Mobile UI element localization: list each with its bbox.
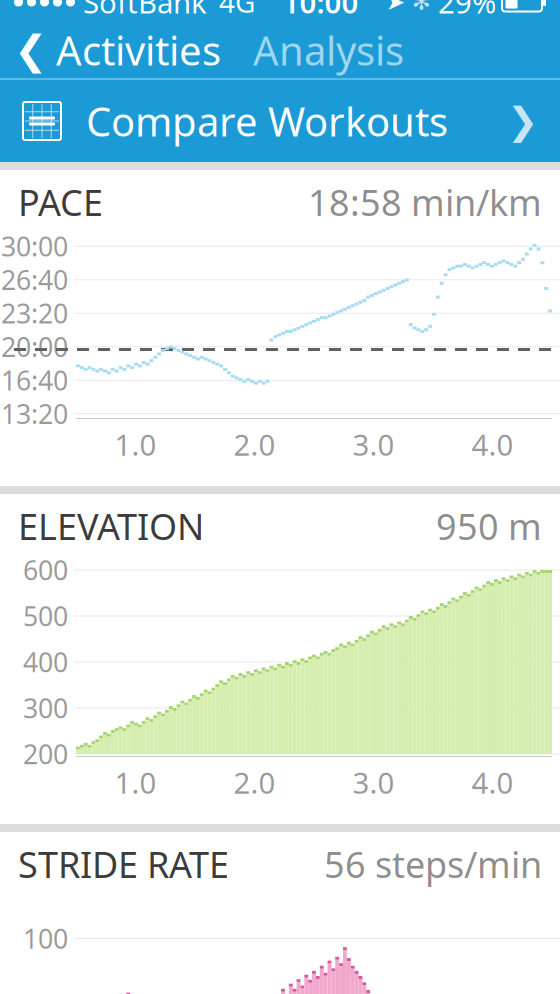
staticText: Activities [56, 23, 221, 76]
staticText: 300 [23, 690, 68, 726]
staticText: 200 [23, 736, 68, 772]
staticText: 56 steps/min [324, 840, 542, 888]
staticText: STRIDE RATE [18, 840, 229, 888]
staticText: 30:00 [1, 228, 68, 264]
button[interactable]: ❮ [0, 22, 231, 78]
staticText: 16:40 [1, 362, 68, 398]
staticText: 1.0 [114, 763, 156, 802]
staticText: PACE [18, 178, 103, 226]
staticText: Analysis [253, 23, 404, 76]
staticText: ✻ [412, 0, 431, 15]
staticText: 23:20 [1, 295, 68, 331]
staticText: Compare Workouts [86, 94, 448, 147]
staticText: 26:40 [1, 262, 68, 297]
staticText: 3.0 [352, 763, 394, 802]
staticText: 18:58 min/km [308, 178, 542, 226]
staticText: 950 m [436, 502, 542, 550]
staticText: 4.0 [471, 763, 513, 802]
staticText: 100 [23, 921, 68, 956]
staticText: 1.0 [114, 425, 156, 464]
staticText: 600 [23, 552, 68, 588]
staticText: 20:00 [1, 329, 68, 364]
staticText: 4.0 [471, 425, 513, 464]
staticText: ELEVATION [18, 502, 204, 550]
staticText: ➤ [386, 0, 405, 15]
staticText: 29% [438, 0, 496, 21]
staticText: 400 [23, 644, 68, 680]
staticText: 10:00 [282, 0, 358, 21]
staticText: 13:20 [1, 396, 68, 431]
button[interactable]: Compare Workouts [0, 80, 560, 162]
staticText: 4G [219, 0, 255, 21]
staticText: ❮ [14, 27, 48, 73]
staticText: 500 [23, 598, 68, 634]
staticText: 3.0 [352, 425, 394, 464]
staticText: SoftBank [83, 0, 207, 21]
staticText: 2.0 [233, 763, 275, 802]
staticText: ❯ [507, 100, 538, 142]
staticText: 2.0 [233, 425, 275, 464]
